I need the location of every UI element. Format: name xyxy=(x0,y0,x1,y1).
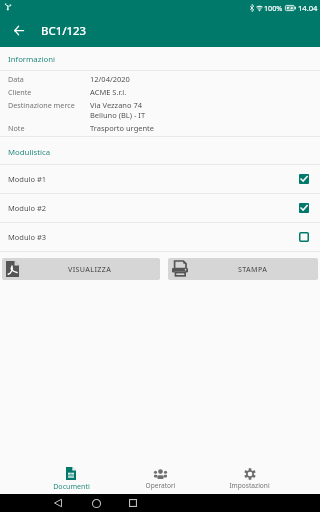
staticText: Data xyxy=(8,74,90,84)
staticText: Operatori xyxy=(145,481,176,490)
button[interactable]: VISUALIZZA xyxy=(2,258,160,280)
button[interactable]: Modulo #2 xyxy=(0,194,320,222)
button[interactable]: Recents xyxy=(124,494,142,512)
staticText: 12/04/2020 xyxy=(90,74,130,84)
button[interactable]: Impostazioni xyxy=(205,458,294,494)
staticText: VISUALIZZA xyxy=(68,264,112,274)
staticText: Modulistica xyxy=(8,147,51,158)
staticText: Documenti xyxy=(53,481,90,491)
staticText: Note xyxy=(8,123,90,133)
staticText: Informazioni xyxy=(8,54,55,65)
staticText: Via Vezzano 74 Belluno (BL) - IT xyxy=(90,100,146,120)
staticText: Modulo #3 xyxy=(8,232,299,242)
button[interactable]: Back xyxy=(49,494,67,512)
button[interactable]: Modulo #3 xyxy=(0,223,320,251)
button[interactable]: Operatori xyxy=(116,458,205,494)
staticText: 14.04 xyxy=(298,3,318,13)
staticText: 100% xyxy=(264,3,283,13)
button[interactable]: STAMPA xyxy=(168,258,318,280)
staticText: STAMPA xyxy=(238,264,268,274)
staticText: Impostazioni xyxy=(229,481,270,490)
button[interactable]: Modulo #1 xyxy=(0,165,320,193)
staticText: Destinazione merce xyxy=(8,100,90,110)
staticText: Modulo #1 xyxy=(8,174,299,184)
button[interactable]: Home xyxy=(87,494,105,512)
staticText: Trasporto urgente xyxy=(90,123,155,133)
staticText: ACME S.r.l. xyxy=(90,87,127,97)
staticText: Cliente xyxy=(8,87,90,97)
button[interactable]: Documenti xyxy=(26,458,116,494)
staticText: BC1/123 xyxy=(41,23,87,39)
staticText: Modulo #2 xyxy=(8,203,299,213)
button[interactable]: Back xyxy=(0,16,38,47)
